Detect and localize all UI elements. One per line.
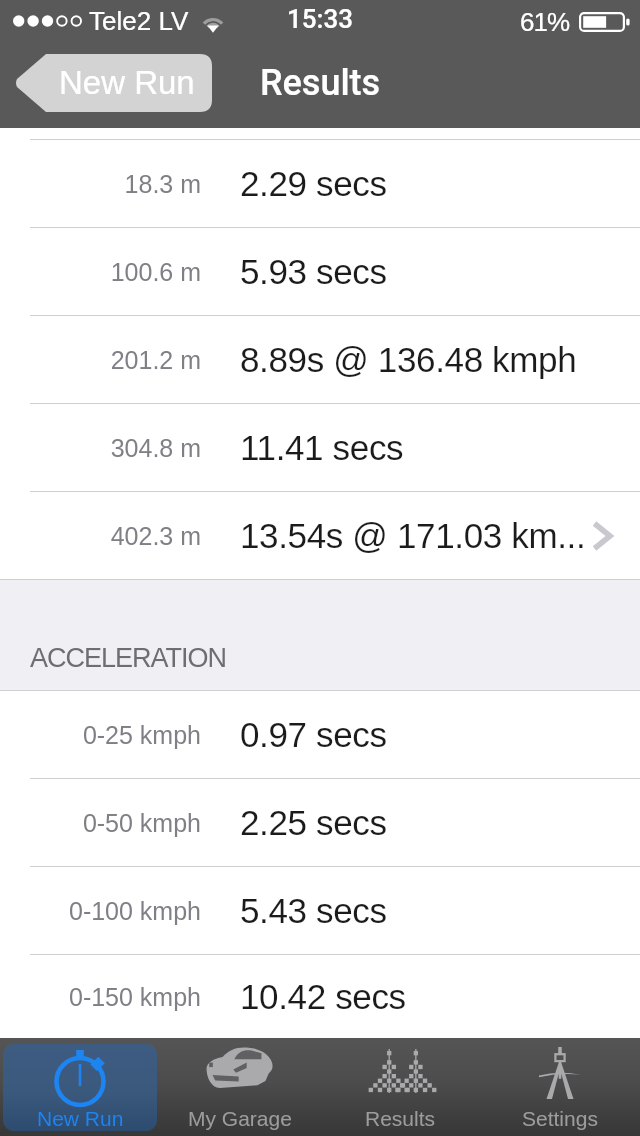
staticText: Tele2 LV	[89, 6, 189, 35]
staticText: 2.29 secs	[240, 164, 640, 203]
button[interactable]: 18.3 m	[0, 140, 640, 227]
button[interactable]: 0-150 kmph	[0, 955, 640, 1038]
staticText: 11.41 secs	[240, 428, 640, 467]
staticText: 100.6 m	[0, 258, 201, 286]
staticText: 15:33	[287, 4, 354, 34]
staticText: New Run	[37, 1107, 124, 1130]
button[interactable]: Back to New Run	[15, 54, 212, 112]
staticText: New Run	[59, 64, 195, 101]
staticText: 402.3 m	[0, 522, 201, 550]
staticText: 8.89s @ 136.48 kmph	[240, 340, 640, 379]
button[interactable]: 402.3 m	[0, 492, 640, 579]
button[interactable]: 304.8 m	[0, 404, 640, 491]
button[interactable]: Results	[323, 1044, 477, 1131]
staticText: 0-50 kmph	[0, 809, 201, 837]
staticText: 5.43 secs	[240, 891, 640, 930]
staticText: 0-150 kmph	[0, 983, 201, 1011]
staticText: 10.42 secs	[240, 977, 640, 1016]
staticText: 0-25 kmph	[0, 721, 201, 749]
staticText: Results	[260, 62, 381, 104]
staticText: Settings	[522, 1107, 598, 1130]
button[interactable]: 100.6 m	[0, 228, 640, 315]
staticText: My Garage	[188, 1107, 292, 1130]
staticText: 5.93 secs	[240, 252, 640, 291]
staticText: 61%	[520, 7, 570, 36]
staticText: 201.2 m	[0, 346, 201, 374]
button[interactable]: 0-25 kmph	[0, 691, 640, 778]
staticText: 304.8 m	[0, 434, 201, 462]
staticText: 0.97 secs	[240, 715, 640, 754]
button[interactable]: My Garage	[163, 1044, 317, 1131]
button[interactable]: 201.2 m	[0, 316, 640, 403]
staticText: 0-100 kmph	[0, 897, 201, 925]
button[interactable]: 0-100 kmph	[0, 867, 640, 954]
staticText: 13.54s @ 171.03 km...	[240, 516, 592, 555]
staticText: 18.3 m	[0, 170, 201, 198]
button[interactable]: 0-50 kmph	[0, 779, 640, 866]
staticText: Results	[365, 1107, 436, 1130]
staticText: ACCELERATION	[30, 643, 227, 673]
button[interactable]: New Run	[3, 1044, 157, 1131]
staticText: 2.25 secs	[240, 803, 640, 842]
button[interactable]: Settings	[483, 1044, 637, 1131]
